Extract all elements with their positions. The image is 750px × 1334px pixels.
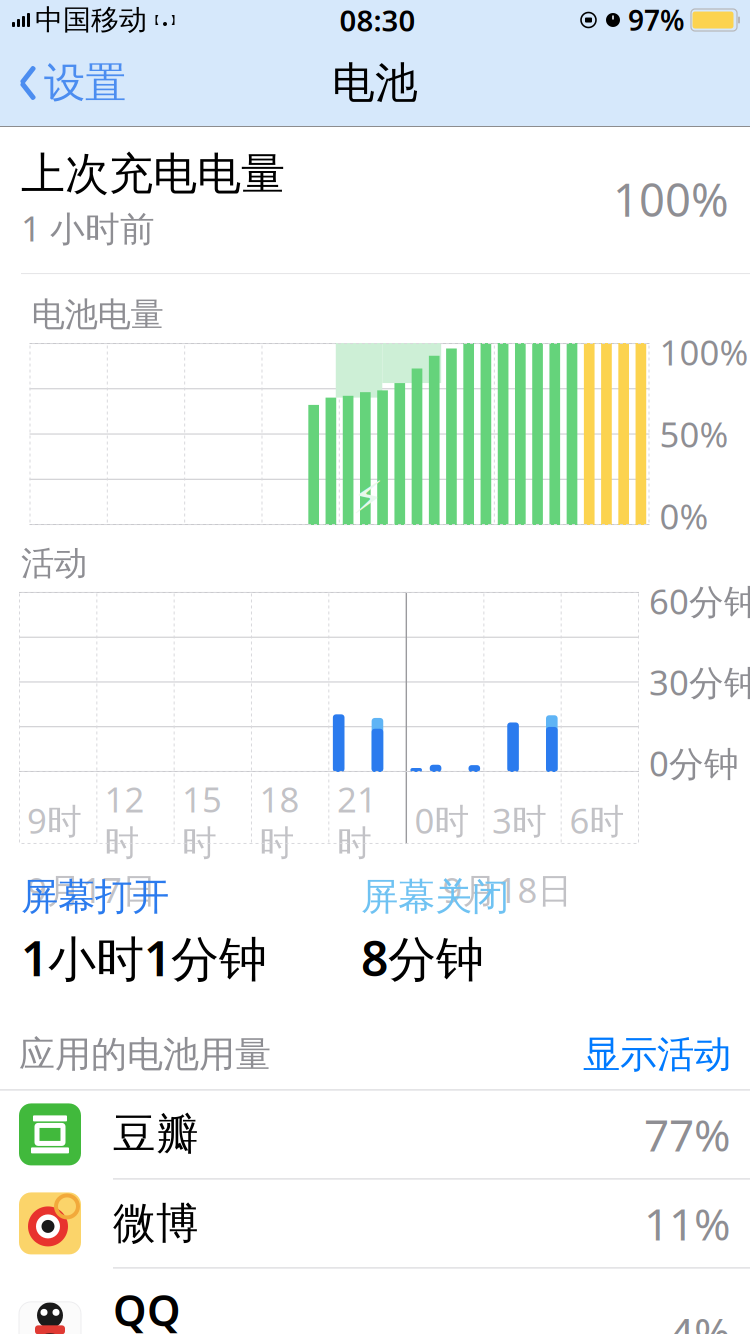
staticText: 0分钟 (649, 740, 739, 786)
staticText: 0% (659, 493, 708, 539)
staticText: 活动 (21, 543, 87, 584)
staticText: 3时 (492, 797, 547, 843)
staticText: 08:30 (339, 0, 415, 39)
staticText: 电池 (332, 57, 418, 109)
staticText: 18时 (259, 776, 299, 865)
button[interactable]: QQ (0, 1268, 750, 1334)
staticText: 9月18日 (442, 867, 572, 913)
staticText: 显示活动 (583, 1032, 731, 1077)
staticText: 12时 (104, 776, 144, 865)
staticText: 11% (644, 1194, 731, 1253)
staticText: 100% (613, 169, 729, 229)
staticText: 屏幕关闭 (361, 874, 509, 920)
staticText: 100% (659, 329, 748, 375)
staticText: QQ (113, 1281, 181, 1334)
staticText: 豆瓣 (113, 1108, 199, 1161)
button[interactable]: 显示活动 (583, 1032, 731, 1077)
staticText: 50% (659, 411, 728, 457)
staticText: 上次充电电量 (21, 147, 285, 201)
staticText: 9月17日 (27, 867, 157, 913)
staticText: 设置 (44, 58, 126, 108)
staticText: 9时 (27, 797, 82, 843)
staticText: 60分钟 (649, 578, 750, 624)
staticText: 1 小时前 (21, 205, 155, 251)
staticText: 屏幕打开 (21, 874, 169, 920)
staticText: 97% (628, 1, 685, 39)
button[interactable]: 微博 (0, 1179, 750, 1268)
staticText: 电池电量 (31, 294, 163, 335)
staticText: 6时 (569, 797, 624, 843)
staticText: 4% (669, 1304, 731, 1334)
staticText: 微博 (113, 1197, 199, 1250)
staticText: ⚡︎ (352, 472, 384, 523)
staticText: 8分钟 (361, 926, 484, 989)
button[interactable]: 设置 (0, 50, 126, 116)
staticText: 77% (644, 1105, 731, 1164)
staticText: 0时 (414, 797, 469, 843)
staticText: 21时 (337, 776, 377, 865)
button[interactable]: 豆瓣 (0, 1090, 750, 1179)
staticText: 1小时1分钟 (21, 926, 267, 989)
staticText: 15时 (182, 776, 222, 865)
staticText: 应用的电池用量 (19, 1032, 271, 1077)
staticText: 中国移动 (35, 3, 147, 37)
staticText: 30分钟 (649, 659, 750, 705)
